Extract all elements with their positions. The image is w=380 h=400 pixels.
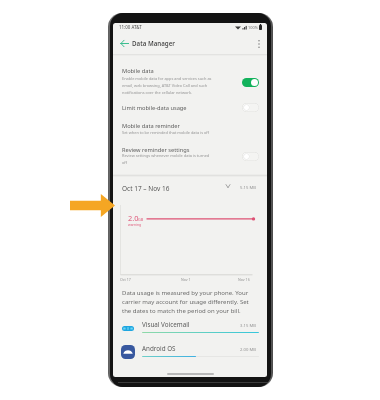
staticText: Review settings whenever mobile data is … — [122, 153, 214, 165]
staticText: 3.15 MB — [240, 323, 256, 329]
button[interactable]: Review reminder settings — [113, 142, 267, 167]
button[interactable]: Turn off mobile data — [242, 78, 259, 87]
staticText: Review reminder settings — [122, 146, 190, 154]
staticText: warning — [128, 222, 142, 227]
staticText: 2.00 MB — [240, 347, 256, 353]
button[interactable]: Turn on — [242, 152, 259, 161]
staticText: Data usage is measured by your phone. Yo… — [122, 289, 252, 315]
staticText: GB — [138, 217, 144, 222]
staticText: Oct 17 — [120, 277, 131, 282]
button[interactable]: Navigate up — [116, 33, 133, 54]
button[interactable]: Mobile data — [113, 65, 267, 96]
staticText: Oct 17 – Nov 16 — [122, 184, 170, 193]
staticText: Android OS — [142, 344, 176, 353]
button[interactable]: More options — [251, 33, 266, 54]
staticText: Mobile data — [122, 67, 154, 75]
staticText: 100% — [248, 25, 258, 30]
staticText: Mobile data reminder — [122, 122, 180, 130]
staticText: Set when to be reminded that mobile data… — [122, 130, 247, 135]
button[interactable]: Oct 17 – Nov 16 — [113, 178, 267, 197]
button[interactable]: Limit mobile-data usage — [113, 100, 267, 116]
staticText: Data Manager — [132, 39, 176, 47]
button[interactable]: Turn on — [242, 103, 259, 112]
staticText: Nov 16 — [238, 277, 250, 282]
staticText: 5.15 MB — [240, 185, 256, 191]
button[interactable]: Android OS — [113, 341, 267, 363]
staticText: Enable mobile data for apps and services… — [122, 76, 214, 95]
staticText: 11:00 AT&T — [119, 24, 142, 30]
button[interactable]: Visual Voicemail — [113, 317, 267, 339]
button[interactable]: Mobile data reminder — [113, 119, 267, 137]
staticText: Visual Voicemail — [142, 320, 190, 329]
staticText: Nov 1 — [181, 277, 191, 282]
staticText: Limit mobile-data usage — [122, 104, 187, 112]
staticText: 2.0 — [128, 213, 139, 223]
